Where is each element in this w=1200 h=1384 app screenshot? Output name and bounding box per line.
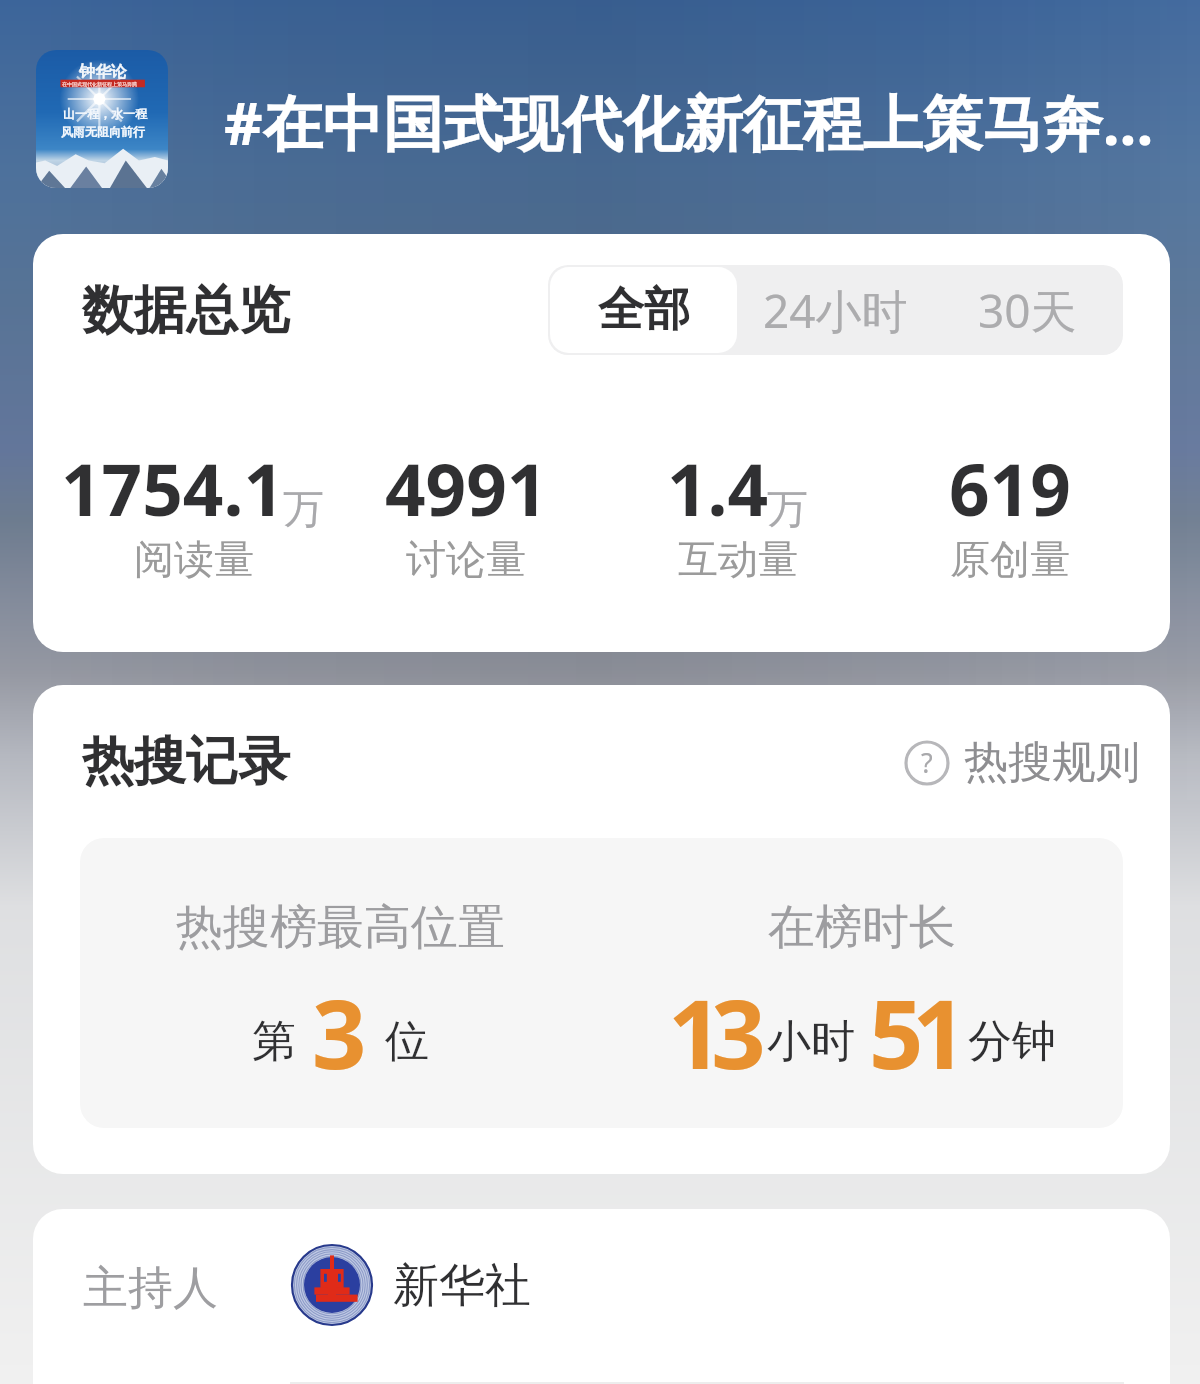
staticText: 热搜榜最高位置 [176,898,505,957]
staticText: 讨论量 [406,534,526,584]
staticText: 数据总览 [82,278,290,344]
button[interactable]: #在中国式现代化新征程上策马奔... [224,81,1174,163]
staticText: 全部 [598,281,690,339]
staticText: 钟华论 [79,62,127,82]
staticText: 阅读量 [134,534,254,584]
staticText: 在中国式现代化新征程上策马奔腾 [62,81,137,87]
button[interactable]: Topic image [36,50,168,188]
button[interactable]: 数据总览 [82,278,290,344]
staticText: 新华社 [393,1257,531,1315]
button[interactable]: 24小时 [741,267,929,353]
staticText: 51 [869,967,956,1096]
staticText: 1754.1 [61,440,285,537]
staticText: 4991 [385,440,548,537]
staticText: 风雨无阻向前行 [61,124,145,139]
button[interactable]: 全部 [550,267,737,353]
button[interactable]: 30天 [933,267,1121,353]
staticText: 第 [252,1014,296,1069]
staticText: #在中国式现代化新征程上策马奔... [224,81,1174,163]
staticText: 互动量 [678,534,798,584]
button[interactable]: 新华社 [292,1245,531,1325]
staticText: 619 [949,440,1071,537]
staticText: 30天 [978,279,1077,342]
staticText: 位 [385,1014,429,1069]
staticText: 小时 [767,1014,855,1069]
staticText: 在榜时长 [768,898,956,957]
staticText: 原创量 [950,534,1070,584]
button[interactable]: ? [904,735,1140,790]
staticText: 1.4 [667,440,769,537]
staticText: 万 [767,484,808,536]
staticText: 分钟 [968,1014,1056,1069]
staticText: 万 [283,484,324,536]
staticText: 热搜规则 [964,735,1140,790]
staticText: 热搜记录 [82,729,290,795]
staticText: 24小时 [763,279,908,342]
staticText: 主持人 [83,1260,218,1317]
staticText: 3 [312,967,367,1096]
staticText: 山一程，水一程 [63,106,147,121]
staticText: 13 [668,967,755,1096]
button[interactable]: 热搜记录 [82,729,290,795]
staticText: ? [921,744,933,781]
